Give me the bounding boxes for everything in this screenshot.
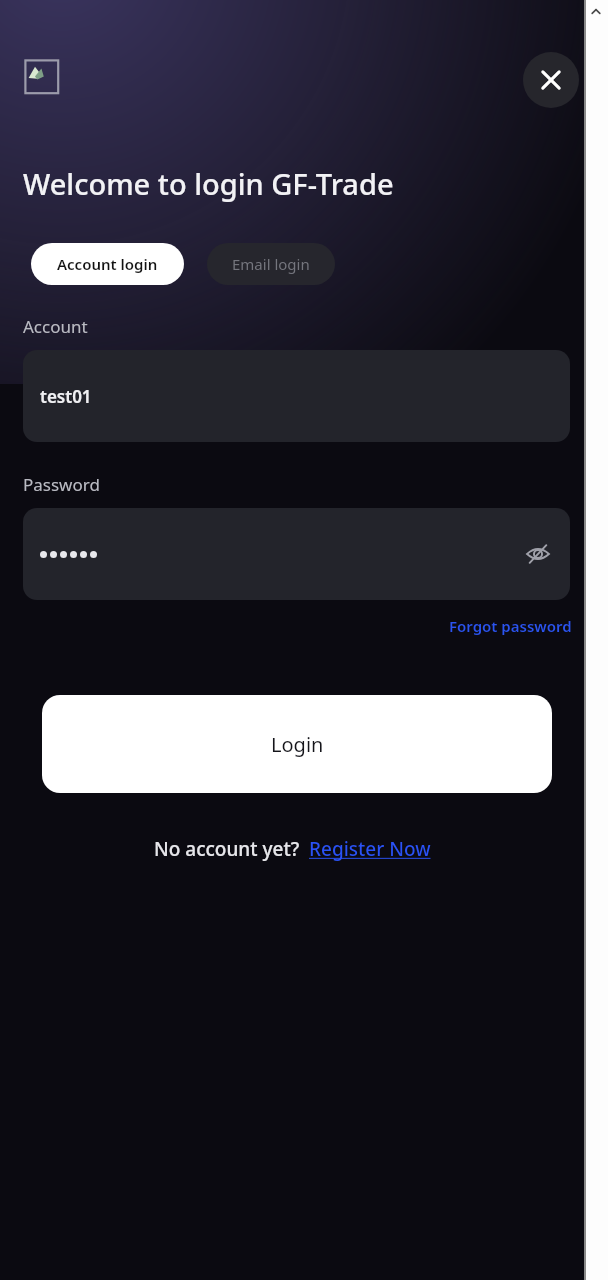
staticText: Login xyxy=(271,731,324,758)
staticText: Welcome to login GF-Trade xyxy=(23,164,394,203)
button[interactable]: Register Now xyxy=(309,836,431,862)
staticText: Account login xyxy=(57,254,158,274)
staticText: Account xyxy=(23,315,88,338)
button[interactable]: Logo xyxy=(23,58,63,98)
staticText: Forgot password xyxy=(449,616,572,636)
button[interactable]: Login xyxy=(42,695,552,793)
button[interactable]: Show password xyxy=(23,508,570,600)
button[interactable]: Close xyxy=(523,52,579,108)
button[interactable]: Account login xyxy=(31,243,184,285)
staticText: test01 xyxy=(40,385,92,408)
button[interactable]: Forgot password xyxy=(449,616,572,636)
button[interactable]: Show password xyxy=(518,534,558,574)
staticText: Password xyxy=(23,473,100,496)
button[interactable]: Email login xyxy=(207,243,335,285)
staticText: Register Now xyxy=(309,836,431,862)
staticText: No account yet? xyxy=(154,836,300,862)
button[interactable]: test01 xyxy=(23,350,570,442)
staticText: Email login xyxy=(232,254,310,274)
